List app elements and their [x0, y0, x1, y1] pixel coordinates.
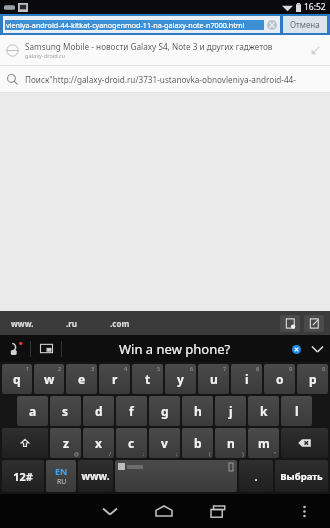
button[interactable]: Close ad [288, 341, 304, 357]
button[interactable]: Hide [304, 335, 330, 362]
staticText: 4 [124, 365, 128, 372]
button[interactable]: Samsung keyboard settings [0, 335, 30, 362]
button[interactable]: y [165, 364, 196, 394]
staticText: b [194, 435, 202, 451]
button[interactable]: Hide keyboard [83, 494, 137, 528]
staticText: Поиск"http://galaxy-droid.ru/3731-ustano… [25, 74, 324, 85]
button[interactable]: n [215, 428, 246, 458]
button[interactable]: www. [78, 460, 113, 492]
button[interactable]: h [182, 396, 213, 426]
staticText: y [177, 371, 184, 387]
staticText: @ [74, 450, 79, 457]
staticText: 9 [289, 365, 293, 372]
button[interactable]: Samsung Mobile - новости Galaxy S4, Note… [0, 35, 330, 65]
staticText: o [276, 371, 284, 387]
staticText: 12# [13, 469, 33, 484]
staticText: e [78, 371, 86, 387]
staticText: : [143, 450, 145, 457]
staticText: h [194, 403, 202, 419]
staticText: a [29, 403, 37, 419]
staticText: i [245, 371, 249, 387]
staticText: Samsung Mobile - новости Galaxy S4, Note… [25, 41, 273, 52]
staticText: 7 [223, 365, 227, 372]
button[interactable]: 12# [2, 460, 44, 492]
button[interactable]: m [248, 428, 279, 458]
staticText: 3 [91, 365, 95, 372]
button[interactable]: r [99, 364, 130, 394]
staticText: n [227, 435, 235, 451]
button[interactable]: EN [46, 460, 76, 492]
staticText: m [258, 435, 270, 451]
staticText: v [161, 435, 168, 451]
button[interactable]: .ru [63, 316, 81, 331]
button[interactable]: Win a new phone? [62, 335, 288, 362]
button[interactable]: u [198, 364, 229, 394]
staticText: g [161, 403, 169, 419]
staticText: 2 [58, 365, 62, 372]
button[interactable]: Edit [304, 315, 324, 332]
staticText: w [44, 371, 55, 387]
button[interactable]: Backspace [281, 428, 328, 458]
staticText: www. [11, 318, 34, 329]
staticText: c [128, 435, 135, 451]
button[interactable]: www. [8, 316, 37, 331]
staticText: q [13, 371, 21, 387]
button[interactable]: z [50, 428, 81, 458]
button[interactable]: . [239, 460, 273, 492]
button[interactable]: a [17, 396, 48, 426]
button[interactable]: f [116, 396, 147, 426]
staticText: s [62, 403, 69, 419]
staticText: ) [242, 450, 244, 457]
staticText: k [260, 403, 268, 419]
staticText: j [229, 403, 233, 419]
button[interactable]: Поиск"http://galaxy-droid.ru/3731-ustano… [0, 66, 330, 92]
button[interactable]: Shift [2, 428, 48, 458]
staticText: ( [209, 450, 211, 457]
staticText: Win a new phone? [119, 340, 231, 358]
staticText: 16:52 [304, 1, 326, 13]
button[interactable]: i [231, 364, 262, 394]
button[interactable]: Clear [266, 19, 278, 31]
button[interactable]: Menu [283, 494, 326, 528]
staticText: www. [81, 469, 110, 483]
button[interactable]: j [215, 396, 246, 426]
button[interactable]: e [66, 364, 97, 394]
staticText: EN [55, 465, 68, 477]
staticText: vleniya-android-44-kitkat-cyanogenmod-11… [6, 20, 245, 30]
button[interactable]: v [149, 428, 180, 458]
button[interactable]: t [132, 364, 163, 394]
staticText: r [112, 371, 118, 387]
staticText: t [145, 371, 151, 387]
button[interactable]: Recent apps [191, 494, 245, 528]
button[interactable]: p [297, 364, 328, 394]
button[interactable]: Edit suggestion [306, 41, 324, 59]
staticText: x [95, 435, 102, 451]
button[interactable]: o [264, 364, 295, 394]
staticText: . [254, 469, 258, 484]
button[interactable]: d [83, 396, 114, 426]
button[interactable]: vleniya-android-44-kitkat-cyanogenmod-11… [3, 16, 280, 33]
staticText: d [95, 403, 103, 419]
staticText: 1 [26, 365, 30, 372]
button[interactable]: Отмена [283, 16, 327, 33]
staticText: Отмена [290, 19, 320, 30]
button[interactable]: g [149, 396, 180, 426]
button[interactable]: k [248, 396, 279, 426]
button[interactable]: s [50, 396, 81, 426]
button[interactable]: Keyboard layout [31, 335, 61, 362]
button[interactable]: x [83, 428, 114, 458]
button[interactable]: Home [137, 494, 191, 528]
button[interactable]: l [281, 396, 312, 426]
staticText: RU [57, 477, 67, 487]
staticText: p [309, 371, 317, 387]
button[interactable]: w [34, 364, 64, 394]
button[interactable]: q [2, 364, 32, 394]
staticText: l [295, 403, 299, 419]
button[interactable]: b [182, 428, 213, 458]
button[interactable]: Clear clipboard [280, 315, 300, 332]
button[interactable]: .com [107, 316, 133, 331]
staticText: .ru [66, 318, 78, 329]
button[interactable]: Выбрать [275, 460, 328, 492]
button[interactable]: Space [115, 460, 237, 492]
button[interactable]: c [116, 428, 147, 458]
